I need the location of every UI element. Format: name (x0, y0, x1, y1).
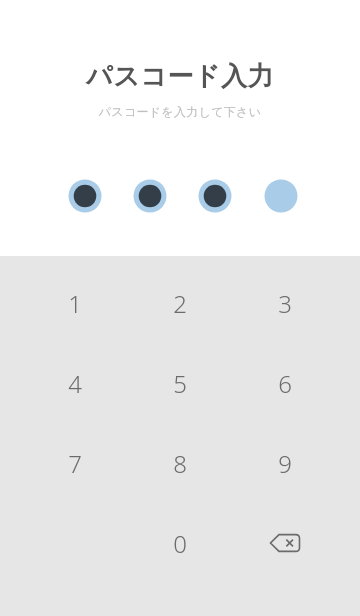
button[interactable]: 6 (237, 345, 333, 421)
staticText: 0 (173, 527, 187, 560)
staticText: 2 (173, 287, 187, 320)
staticText: 8 (173, 447, 187, 480)
button[interactable]: 9 (237, 425, 333, 501)
staticText: 3 (278, 287, 292, 320)
staticText: 7 (68, 447, 82, 480)
button[interactable]: 2 (132, 265, 228, 341)
staticText: パスコード入力 (0, 60, 360, 93)
button[interactable]: 3 (237, 265, 333, 341)
staticText: 1 (68, 287, 82, 320)
button[interactable]: 1 (27, 265, 123, 341)
button[interactable]: 8 (132, 425, 228, 501)
staticText: 5 (173, 367, 187, 400)
staticText: 9 (278, 447, 292, 480)
button[interactable]: 0 (132, 505, 228, 581)
staticText: 4 (68, 367, 82, 400)
button[interactable]: 7 (27, 425, 123, 501)
staticText: 6 (278, 367, 292, 400)
button[interactable]: 4 (27, 345, 123, 421)
button[interactable]: Backspace (237, 505, 333, 581)
staticText: パスコードを入力して下さい (0, 104, 360, 119)
button[interactable]: 5 (132, 345, 228, 421)
